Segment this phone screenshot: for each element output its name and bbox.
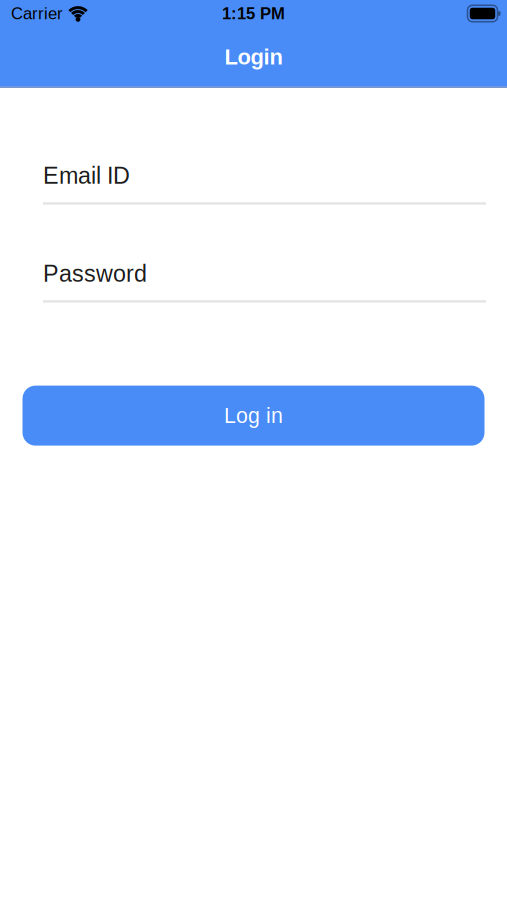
button[interactable]: Log in <box>22 386 484 446</box>
staticText: Log in <box>224 404 283 427</box>
staticText: Email ID <box>43 163 130 189</box>
staticText: Login <box>224 44 282 69</box>
staticText: 1:15 PM <box>222 4 285 23</box>
staticText: Password <box>43 261 147 287</box>
button[interactable]: Password <box>43 261 486 303</box>
button[interactable]: Email ID <box>43 163 486 205</box>
staticText: Carrier <box>11 4 63 23</box>
